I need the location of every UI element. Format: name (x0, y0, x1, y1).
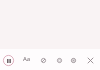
button[interactable]: Aa (22, 54, 32, 64)
button[interactable]: Highlight colour two (67, 54, 79, 66)
button[interactable]: Text formatting (2, 54, 15, 67)
button[interactable]: Close (84, 54, 96, 66)
staticText: Aa (23, 55, 31, 63)
button[interactable]: No highlight (37, 54, 49, 66)
button[interactable]: Highlight colour one (53, 54, 65, 66)
